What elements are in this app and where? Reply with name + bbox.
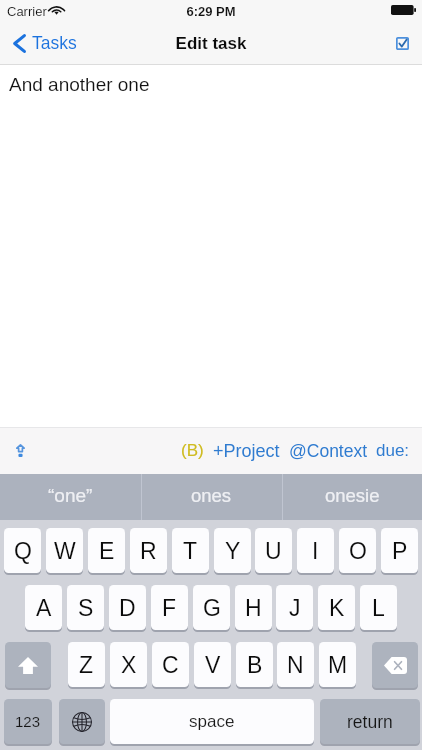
staticText: 123 [15,713,41,730]
button[interactable]: U [255,528,292,573]
button[interactable]: return [320,699,420,744]
staticText: A [36,595,52,621]
button[interactable]: @Context [285,435,372,467]
button[interactable]: K [318,585,355,630]
staticText: 6:29 PM [0,4,422,19]
staticText: Y [225,538,241,564]
staticText: ones [191,485,232,506]
button[interactable]: O [339,528,376,573]
button[interactable]: V [194,642,231,687]
button[interactable]: Change keyboard language [59,699,105,744]
button[interactable]: S [67,585,104,630]
button[interactable]: E [88,528,125,573]
staticText: V [205,652,221,678]
staticText: G [203,595,221,621]
staticText: R [140,538,157,564]
button[interactable]: onesie [282,474,422,520]
staticText: M [328,652,348,678]
staticText: N [287,652,304,678]
staticText: C [162,652,179,678]
button[interactable]: C [152,642,189,687]
button[interactable]: J [276,585,313,630]
staticText: I [312,538,319,564]
button[interactable]: Q [4,528,41,573]
button[interactable]: “one” [0,474,141,520]
staticText: Carrier [7,4,47,19]
staticText: S [78,595,94,621]
staticText: E [99,538,115,564]
staticText: due: [376,441,410,460]
button[interactable]: W [46,528,83,573]
staticText: @Context [289,441,368,461]
staticText: space [189,712,235,731]
staticText: Edit task [0,34,422,53]
staticText: K [329,595,345,621]
staticText: L [372,595,385,621]
button[interactable]: I [297,528,334,573]
staticText: Q [14,538,32,564]
staticText: H [245,595,262,621]
button[interactable]: M [319,642,356,687]
staticText: T [183,538,198,564]
button[interactable]: Backspace [372,642,418,688]
button[interactable]: Y [214,528,251,573]
staticText: onesie [325,485,380,506]
button[interactable]: R [130,528,167,573]
button[interactable]: Z [68,642,105,687]
staticText: Z [79,652,94,678]
button[interactable]: X [110,642,147,687]
button[interactable]: Shift [5,642,51,688]
button[interactable]: G [193,585,230,630]
button[interactable]: D [109,585,146,630]
staticText: “one” [48,485,93,506]
staticText: And another one [9,74,150,95]
staticText: X [121,652,137,678]
staticText: D [119,595,136,621]
button[interactable]: Hide keyboard [4,434,36,466]
button[interactable]: H [235,585,272,630]
button[interactable]: T [172,528,209,573]
button[interactable]: space [110,699,314,744]
button[interactable]: P [381,528,418,573]
staticText: F [162,595,177,621]
staticText: P [392,538,408,564]
button[interactable]: A [25,585,62,630]
button[interactable]: due: [372,435,414,466]
button[interactable]: L [360,585,397,630]
staticText: O [349,538,367,564]
staticText: Tasks [32,33,77,53]
staticText: +Project [213,441,280,461]
staticText: return [347,712,393,732]
button[interactable]: B [236,642,273,687]
staticText: U [265,538,282,564]
staticText: W [54,538,76,564]
staticText: J [289,595,301,621]
button[interactable]: N [277,642,314,687]
button[interactable]: Mark task complete [386,28,418,58]
button[interactable]: (B) [177,435,208,466]
button[interactable]: Tasks [6,26,85,60]
button[interactable]: Numbers and symbols [4,699,52,744]
button[interactable]: +Project [209,435,284,467]
button[interactable]: F [151,585,188,630]
button[interactable]: ones [141,474,282,520]
staticText: B [247,652,263,678]
staticText: (B) [181,441,204,460]
